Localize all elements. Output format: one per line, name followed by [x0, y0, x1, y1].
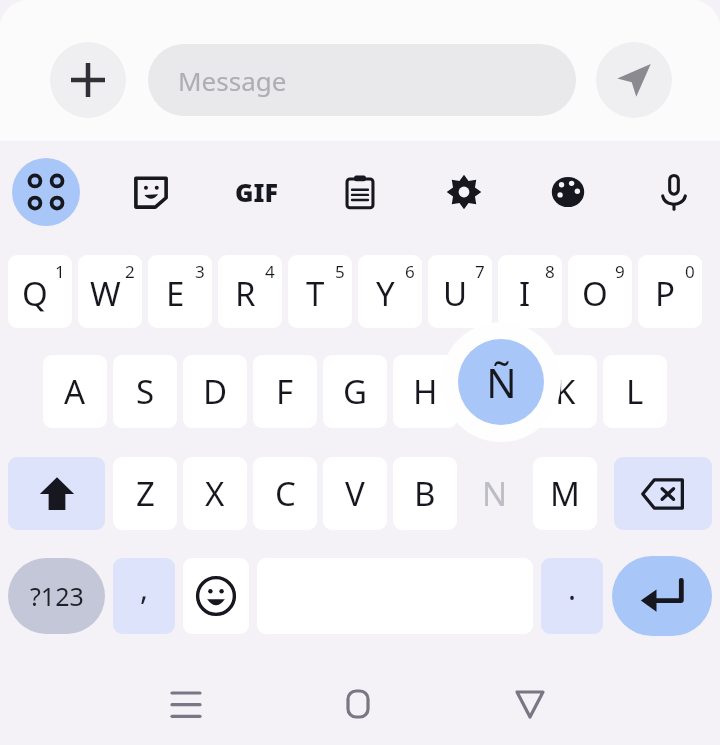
button[interactable]: Keyboard apps [12, 158, 80, 226]
button[interactable]: I [498, 255, 562, 328]
button[interactable]: E [148, 255, 212, 328]
staticText: 7 [475, 260, 485, 283]
staticText: E [166, 271, 185, 316]
button[interactable]: O [568, 255, 632, 328]
staticText: 1 [55, 260, 65, 283]
button[interactable]: Q [8, 255, 72, 328]
button[interactable]: T [288, 255, 352, 328]
button[interactable]: Clipboard [326, 158, 394, 226]
staticText: U [443, 271, 468, 316]
button[interactable]: F [253, 355, 317, 428]
staticText: W [90, 271, 121, 316]
staticText: 2 [125, 260, 135, 283]
button[interactable]: B [393, 457, 457, 530]
staticText: X [205, 471, 225, 516]
staticText: 5 [335, 260, 345, 283]
staticText: I [519, 271, 531, 316]
button[interactable]: Backspace [614, 457, 712, 530]
button[interactable]: P [638, 255, 702, 328]
staticText: P [655, 271, 675, 316]
button[interactable]: Enter [612, 556, 712, 636]
staticText: 6 [405, 260, 415, 283]
staticText: . [568, 568, 577, 609]
staticText: B [414, 471, 436, 516]
staticText: 4 [265, 260, 275, 283]
staticText: Q [22, 271, 48, 316]
button[interactable]: H [393, 355, 457, 428]
button[interactable]: M [533, 457, 597, 530]
staticText: C [275, 471, 296, 516]
button[interactable]: Home [332, 682, 384, 726]
button[interactable]: U [428, 255, 492, 328]
staticText: Message [178, 63, 287, 98]
button[interactable]: Shift [8, 457, 105, 530]
button[interactable]: Y [358, 255, 422, 328]
button[interactable]: S [113, 355, 177, 428]
button[interactable]: GIF [222, 158, 290, 226]
staticText: M [550, 471, 580, 516]
button[interactable]: Themes [534, 158, 602, 226]
button[interactable]: X [183, 457, 247, 530]
staticText: GIF [235, 175, 278, 209]
button[interactable]: R [218, 255, 282, 328]
button[interactable]: L [603, 355, 667, 428]
button[interactable]: W [78, 255, 142, 328]
staticText: 3 [195, 260, 205, 283]
button[interactable] [463, 355, 527, 428]
button[interactable]: C [253, 457, 317, 530]
button[interactable]: , [113, 558, 175, 634]
button[interactable]: Settings [430, 158, 498, 226]
staticText: Ñ [486, 355, 517, 409]
button[interactable]: . [541, 558, 603, 634]
staticText: N [482, 471, 508, 516]
staticText: O [582, 271, 608, 316]
staticText: S [136, 369, 155, 414]
button[interactable]: Message [148, 44, 576, 116]
button[interactable]: N [463, 457, 527, 530]
button[interactable]: Emoji [183, 558, 249, 634]
button[interactable]: Back [504, 682, 556, 726]
staticText: F [276, 369, 294, 414]
button[interactable]: G [323, 355, 387, 428]
staticText: L [626, 369, 644, 414]
button[interactable]: Stickers [117, 158, 185, 226]
staticText: K [555, 369, 576, 414]
staticText: 0 [685, 260, 695, 283]
button[interactable]: V [323, 457, 387, 530]
staticText: R [235, 271, 256, 316]
staticText: A [64, 369, 86, 414]
staticText: 8 [545, 260, 555, 283]
staticText: Z [136, 471, 155, 516]
button[interactable]: K [533, 355, 597, 428]
staticText: , [140, 568, 149, 609]
button[interactable]: Z [113, 457, 177, 530]
staticText: T [306, 271, 325, 316]
staticText: Y [376, 271, 395, 316]
staticText: D [203, 369, 228, 414]
staticText: H [413, 369, 438, 414]
button[interactable]: D [183, 355, 247, 428]
button[interactable]: N with tilde [441, 322, 561, 442]
button[interactable]: ?123 [8, 558, 105, 634]
button[interactable]: Add attachment [50, 42, 126, 118]
button[interactable]: Recents [160, 682, 212, 726]
staticText: G [343, 369, 368, 414]
button[interactable]: Voice input [640, 158, 708, 226]
staticText: V [345, 471, 365, 516]
staticText: ?123 [30, 579, 84, 613]
button[interactable]: Send [596, 42, 672, 118]
button[interactable]: A [43, 355, 107, 428]
staticText: 9 [615, 260, 625, 283]
